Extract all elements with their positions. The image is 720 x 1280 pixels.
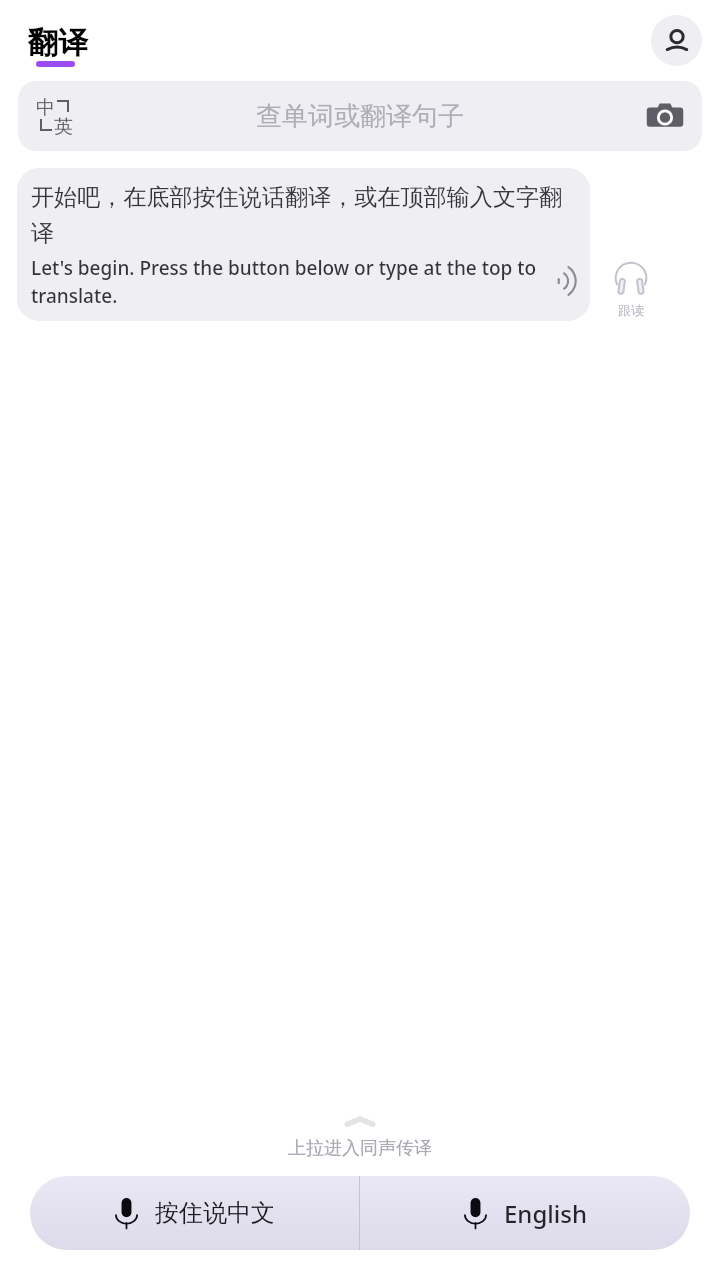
staticText: 跟读 xyxy=(618,302,644,318)
staticText: English xyxy=(504,1197,587,1230)
button[interactable]: 跟读 xyxy=(597,262,665,318)
button[interactable]: 按住说中文 xyxy=(30,1176,359,1250)
staticText: 中 xyxy=(36,96,55,120)
staticText: 查单词或翻译句子 xyxy=(80,100,640,133)
staticText: 按住说中文 xyxy=(155,1198,275,1228)
staticText: 上拉进入同声传译 xyxy=(288,1137,432,1160)
button[interactable]: 开始吧，在底部按住说话翻译，或在顶部输入文字翻译 xyxy=(17,168,590,321)
staticText: Let's begin. Press the button below or t… xyxy=(31,255,561,309)
staticText: 开始吧，在底部按住说话翻译，或在顶部输入文字翻译 xyxy=(31,183,576,248)
button[interactable]: Switch language Chinese English xyxy=(36,94,80,138)
button[interactable]: Account xyxy=(651,15,702,66)
staticText: 翻译 xyxy=(28,24,88,62)
button[interactable]: English xyxy=(360,1176,690,1250)
staticText: 英 xyxy=(54,115,73,139)
button[interactable]: Play pronunciation xyxy=(550,260,590,302)
button[interactable]: 上拉进入同声传译 xyxy=(270,1116,450,1160)
button[interactable]: Camera translate xyxy=(640,91,690,141)
button[interactable]: Switch language Chinese English xyxy=(18,81,702,151)
